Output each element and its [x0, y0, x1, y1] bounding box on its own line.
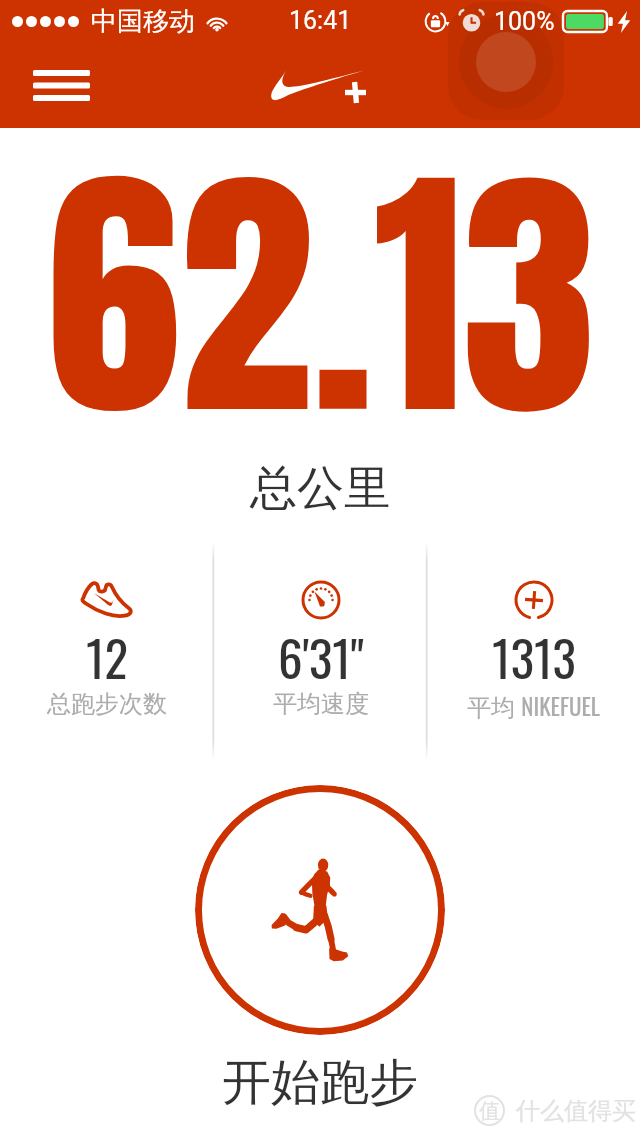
staticText: 62.13	[46, 93, 596, 493]
button[interactable]: 12	[0, 540, 214, 762]
staticText: 6'31"	[278, 621, 364, 694]
button[interactable]: 开始跑步	[195, 785, 445, 1035]
staticText: 开始跑步	[222, 1052, 418, 1114]
staticText: 总公里	[250, 459, 391, 518]
staticText: 12	[86, 621, 128, 694]
button[interactable]: Nike Plus	[262, 60, 374, 108]
staticText: 100%	[494, 7, 555, 36]
staticText: 总跑步次数	[47, 689, 167, 719]
staticText: 平均速度	[273, 689, 369, 719]
staticText: 什么值得买	[516, 1096, 636, 1126]
staticText: 16:41	[289, 6, 352, 35]
button[interactable]: Menu	[17, 55, 106, 115]
button[interactable]: 1313	[427, 540, 640, 762]
button[interactable]: 6'31"	[214, 540, 427, 762]
staticText: 值	[479, 1098, 500, 1124]
staticText: 平均 NIKEFUEL	[467, 689, 600, 724]
staticText: 中国移动	[91, 5, 195, 38]
staticText: 1313	[492, 621, 576, 694]
